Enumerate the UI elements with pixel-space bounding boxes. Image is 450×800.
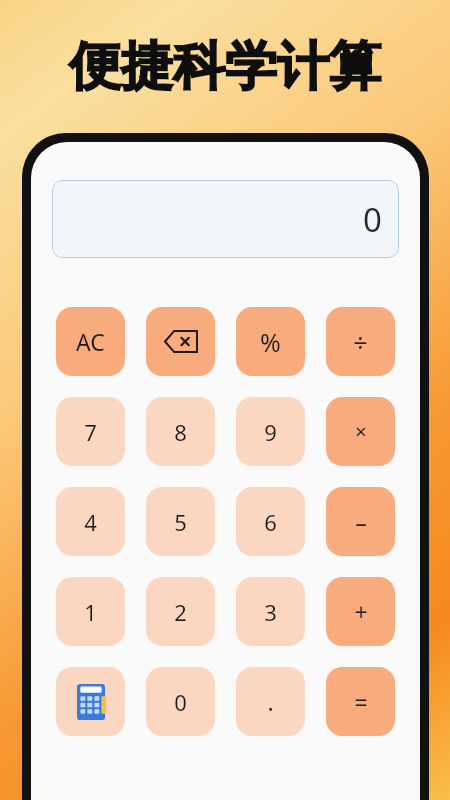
staticText: –	[355, 506, 367, 537]
staticText: 4	[84, 507, 97, 537]
button[interactable]: –	[326, 487, 395, 556]
button[interactable]: +	[326, 577, 395, 646]
staticText: 8	[174, 417, 187, 447]
staticText: AC	[76, 326, 105, 357]
button[interactable]: ×	[326, 397, 395, 466]
button[interactable]: =	[326, 667, 395, 736]
button[interactable]: 7	[56, 397, 125, 466]
button[interactable]: Backspace	[146, 307, 215, 376]
button[interactable]: 4	[56, 487, 125, 556]
button[interactable]: AC	[56, 307, 125, 376]
button[interactable]: 3	[236, 577, 305, 646]
staticText: 6	[264, 507, 277, 537]
button[interactable]: 5	[146, 487, 215, 556]
staticText: %	[260, 325, 281, 359]
button[interactable]: 2	[146, 577, 215, 646]
button[interactable]: 9	[236, 397, 305, 466]
staticText: 3	[264, 597, 277, 627]
button[interactable]: 0	[146, 667, 215, 736]
button[interactable]: ÷	[326, 307, 395, 376]
button[interactable]: 6	[236, 487, 305, 556]
button[interactable]: Scientific calculator	[56, 667, 125, 736]
staticText: =	[354, 686, 368, 717]
staticText: 0	[363, 197, 382, 242]
staticText: +	[354, 596, 368, 627]
staticText: 2	[174, 597, 187, 627]
button[interactable]: 0	[52, 180, 399, 258]
staticText: 9	[264, 417, 277, 447]
staticText: 0	[174, 687, 187, 717]
staticText: 便捷科学计算	[69, 34, 381, 100]
button[interactable]: %	[236, 307, 305, 376]
staticText: 7	[84, 417, 97, 447]
staticText: .	[267, 686, 274, 717]
button[interactable]: 8	[146, 397, 215, 466]
button[interactable]: 1	[56, 577, 125, 646]
staticText: ×	[355, 418, 367, 445]
staticText: 1	[84, 597, 97, 627]
staticText: 5	[174, 507, 187, 537]
staticText: ÷	[353, 325, 368, 359]
button[interactable]: .	[236, 667, 305, 736]
